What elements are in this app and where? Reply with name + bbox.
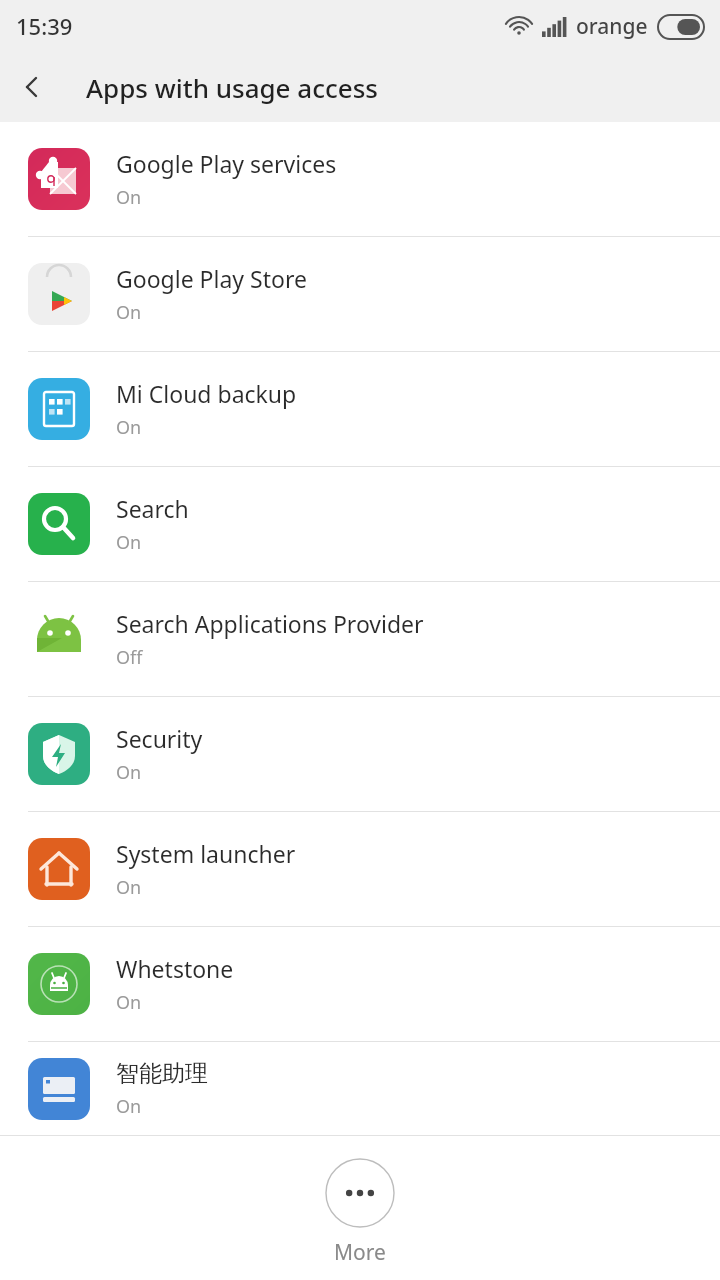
- staticText: Search: [116, 493, 189, 524]
- staticText: On: [116, 415, 142, 440]
- button[interactable]: Mi Cloud backup: [0, 352, 720, 466]
- staticText: On: [116, 300, 142, 325]
- staticText: Apps with usage access: [86, 70, 378, 105]
- button[interactable]: Back: [0, 55, 64, 119]
- staticText: orange: [576, 12, 648, 41]
- button[interactable]: Security: [0, 697, 720, 811]
- staticText: 智能助理: [116, 1059, 208, 1088]
- staticText: More: [334, 1238, 386, 1267]
- staticText: Google Play services: [116, 148, 337, 179]
- button[interactable]: Google Play services: [0, 122, 720, 236]
- staticText: On: [116, 760, 142, 785]
- staticText: Off: [116, 645, 143, 670]
- staticText: Whetstone: [116, 953, 234, 984]
- button[interactable]: Search: [0, 467, 720, 581]
- button[interactable]: 智能助理: [0, 1042, 720, 1135]
- staticText: System launcher: [116, 838, 296, 869]
- staticText: On: [116, 530, 142, 555]
- staticText: Security: [116, 723, 203, 754]
- staticText: On: [116, 990, 142, 1015]
- button[interactable]: More options: [325, 1158, 395, 1267]
- button[interactable]: System launcher: [0, 812, 720, 926]
- staticText: On: [116, 875, 142, 900]
- staticText: Mi Cloud backup: [116, 378, 297, 409]
- staticText: Google Play Store: [116, 263, 307, 294]
- button[interactable]: Google Play Store: [0, 237, 720, 351]
- staticText: On: [116, 1094, 142, 1119]
- staticText: Search Applications Provider: [116, 608, 424, 639]
- button[interactable]: Search Applications Provider: [0, 582, 720, 696]
- button[interactable]: Whetstone: [0, 927, 720, 1041]
- staticText: 15:39: [16, 11, 73, 41]
- staticText: On: [116, 185, 142, 210]
